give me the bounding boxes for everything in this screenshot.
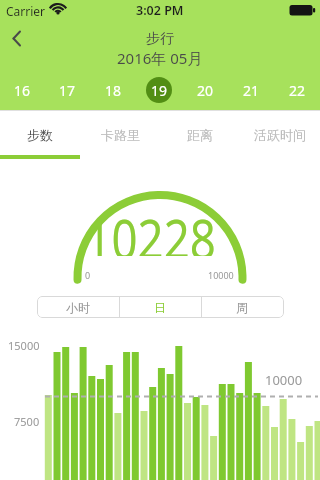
button[interactable]: 活跃时间 (240, 111, 320, 159)
staticText: 周 (236, 300, 248, 315)
button[interactable]: 19 (136, 72, 182, 108)
button[interactable]: 16 (0, 72, 45, 108)
button[interactable]: 17 (45, 72, 90, 108)
staticText: 2016年 05月 (117, 48, 203, 68)
staticText: 10000 (265, 371, 303, 389)
staticText: 小时 (66, 300, 90, 315)
button[interactable]: 距离 (160, 111, 240, 159)
staticText: 步数 (27, 127, 53, 143)
button[interactable] (4, 24, 40, 54)
button[interactable]: 21 (228, 72, 274, 108)
staticText: 10228 (85, 200, 216, 256)
button[interactable]: 18 (90, 72, 136, 108)
staticText: Carrier (6, 3, 46, 19)
staticText: 7500 (14, 414, 40, 429)
button[interactable]: 日 (119, 296, 201, 318)
staticText: 18 (105, 81, 122, 100)
staticText: 步行 (146, 30, 174, 48)
staticText: 19 (151, 81, 168, 100)
staticText: 22 (289, 81, 306, 100)
button[interactable]: 步数 (0, 111, 80, 159)
button[interactable]: 22 (274, 72, 320, 108)
staticText: 日 (154, 300, 166, 315)
button[interactable]: 卡路里 (80, 111, 160, 159)
staticText: 16 (14, 81, 31, 100)
button[interactable]: 20 (182, 72, 228, 108)
staticText: 15000 (8, 338, 40, 353)
button[interactable]: 周 (201, 296, 283, 318)
staticText: 3:02 PM (136, 2, 184, 19)
staticText: 活跃时间 (254, 127, 306, 143)
staticText: 0 (85, 269, 91, 281)
staticText: 20 (197, 81, 214, 100)
staticText: 卡路里 (101, 127, 140, 143)
staticText: 10000 (208, 269, 234, 281)
staticText: 17 (59, 81, 76, 100)
staticText: 21 (243, 81, 260, 100)
staticText: 距离 (187, 127, 213, 143)
button[interactable]: 小时 (37, 296, 119, 318)
